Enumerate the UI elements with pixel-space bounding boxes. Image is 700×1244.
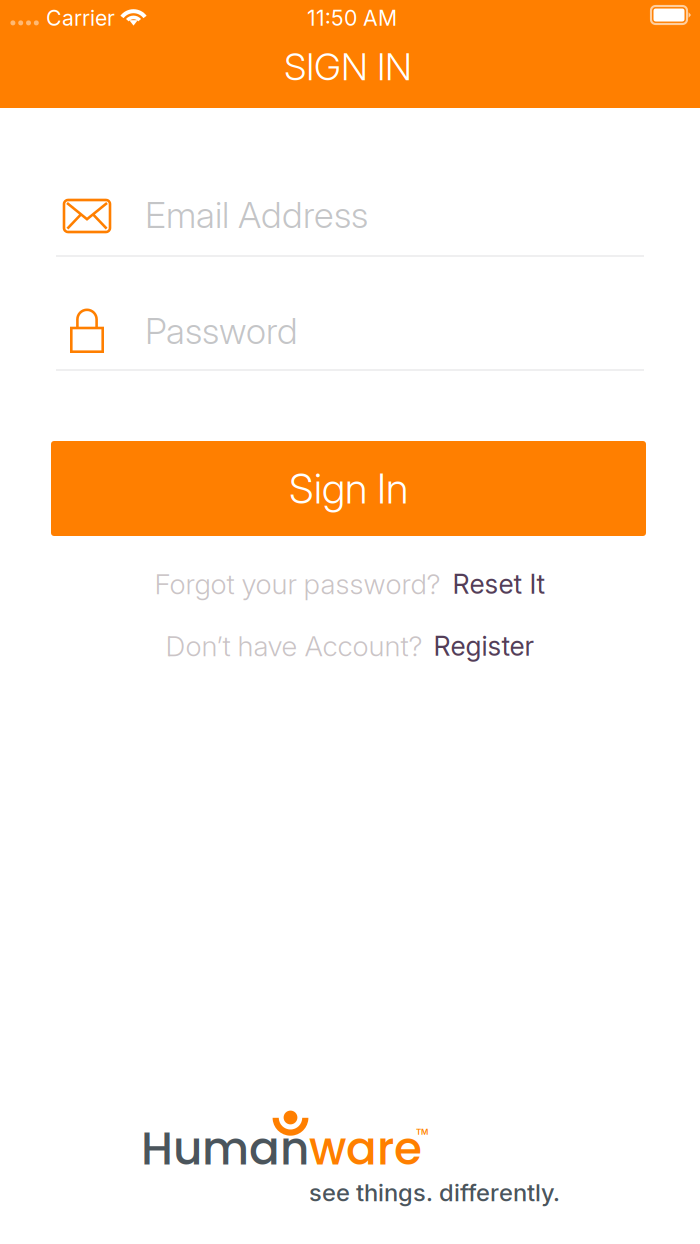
staticText: see things. differently. — [309, 1178, 560, 1207]
staticText: Password — [145, 309, 298, 353]
staticText: Reset It — [452, 568, 545, 600]
button[interactable]: Don’t have Account? — [160, 623, 540, 669]
staticText: TM — [416, 1127, 428, 1137]
staticText: 11:50 AM — [307, 5, 397, 31]
staticText: Email Address — [145, 193, 368, 237]
staticText: Human — [141, 1117, 309, 1180]
button[interactable]: Sign In — [51, 441, 646, 536]
staticText: Forgot your password? — [154, 567, 440, 601]
staticText: Register — [433, 630, 534, 662]
button[interactable]: Forgot your password? — [150, 561, 550, 607]
staticText: SIGN IN — [284, 44, 412, 89]
staticText: Sign In — [289, 463, 408, 513]
staticText: Carrier — [46, 5, 115, 31]
staticText: Don’t have Account? — [165, 629, 422, 663]
staticText: ware — [309, 1117, 422, 1180]
